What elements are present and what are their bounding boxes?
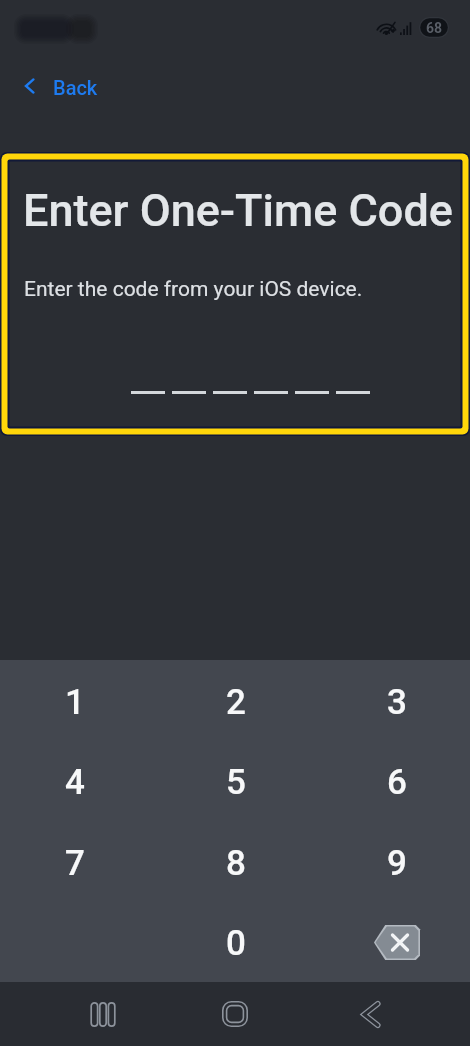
button[interactable]: 9 — [319, 823, 470, 904]
staticText: 7 — [65, 843, 85, 884]
button[interactable]: Home — [211, 990, 259, 1038]
staticText: 9 — [387, 843, 407, 884]
staticText: Enter the code from your iOS device. — [24, 277, 363, 302]
staticText: Enter One-Time Code — [23, 184, 453, 237]
staticText: 1 — [65, 682, 85, 723]
staticText: 0 — [226, 923, 246, 964]
staticText: 8 — [226, 843, 246, 884]
button[interactable]: 8 — [158, 823, 314, 904]
button[interactable]: Enter One-Time Code — [0, 152, 470, 436]
staticText: 2 — [226, 682, 246, 723]
staticText: 6 — [387, 762, 407, 803]
staticText: 68 — [426, 20, 443, 36]
button[interactable]: Back — [14, 69, 106, 106]
button[interactable]: 2 — [158, 662, 314, 743]
button[interactable]: 7 — [0, 823, 153, 904]
staticText: 4 — [65, 762, 85, 803]
staticText: Back — [53, 76, 98, 99]
staticText: 5 — [226, 762, 246, 803]
button[interactable]: 3 — [319, 662, 470, 743]
button[interactable]: Back — [347, 990, 395, 1038]
button[interactable]: 1 — [0, 662, 153, 743]
button[interactable]: 0 — [158, 903, 314, 984]
button[interactable]: Delete — [319, 903, 470, 984]
button[interactable]: Recents — [78, 990, 126, 1038]
button[interactable]: 6 — [319, 742, 470, 823]
staticText: 3 — [387, 682, 407, 723]
button[interactable]: 5 — [158, 742, 314, 823]
button[interactable]: 4 — [0, 742, 153, 823]
button[interactable]: Delete — [374, 925, 420, 960]
